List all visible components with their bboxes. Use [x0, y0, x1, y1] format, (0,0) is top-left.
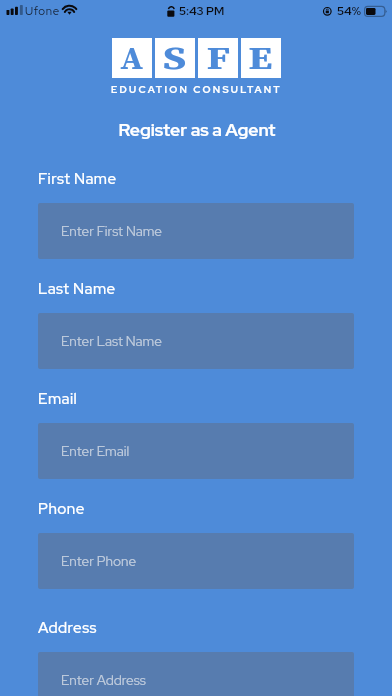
staticText: EDUCATION CONSULTANT — [111, 83, 282, 96]
staticText: E — [248, 36, 274, 76]
button[interactable]: Enter Phone — [38, 533, 354, 589]
button[interactable]: Enter Email — [38, 423, 354, 479]
staticText: S — [163, 36, 187, 76]
staticText: Enter Phone — [61, 552, 137, 570]
staticText: First Name — [38, 169, 117, 189]
staticText: A — [120, 36, 144, 76]
staticText: Enter First Name — [61, 222, 163, 240]
staticText: Phone — [38, 499, 85, 519]
staticText: 5:43 PM — [179, 3, 225, 19]
button[interactable]: Enter Last Name — [38, 313, 354, 369]
staticText: F — [206, 36, 230, 76]
staticText: Enter Email — [61, 442, 130, 460]
staticText: Address — [38, 618, 97, 638]
staticText: 54% — [337, 3, 361, 19]
staticText: Ufone — [25, 3, 60, 18]
button[interactable]: Enter Address — [38, 652, 354, 696]
staticText: Enter Address — [61, 671, 146, 689]
staticText: Email — [38, 389, 78, 409]
staticText: Enter Last Name — [61, 332, 162, 350]
button[interactable]: Enter First Name — [38, 203, 354, 259]
staticText: Register as a Agent — [1, 118, 392, 141]
staticText: Last Name — [38, 279, 116, 299]
